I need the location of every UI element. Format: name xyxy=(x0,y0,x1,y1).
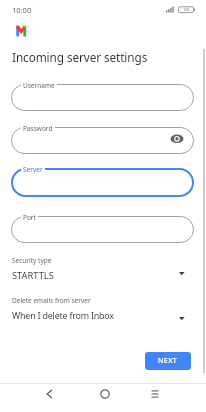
button[interactable] xyxy=(11,84,194,111)
button[interactable] xyxy=(11,127,194,154)
button[interactable] xyxy=(0,252,206,282)
staticText: Server xyxy=(23,165,43,174)
button[interactable] xyxy=(11,216,194,243)
button[interactable]: NEXT xyxy=(145,352,191,370)
button[interactable] xyxy=(0,292,206,324)
staticText: Incoming server settings xyxy=(12,49,148,65)
staticText: STARTTLS xyxy=(12,269,54,282)
button[interactable] xyxy=(95,384,115,404)
staticText: Port xyxy=(23,213,36,222)
button[interactable] xyxy=(145,384,165,404)
staticText: Security type xyxy=(12,256,52,265)
staticText: Username xyxy=(23,81,55,90)
button[interactable] xyxy=(38,384,59,404)
staticText: 10:00 xyxy=(12,5,32,15)
button[interactable] xyxy=(170,134,184,144)
button[interactable] xyxy=(16,25,27,37)
button[interactable] xyxy=(11,168,194,197)
staticText: When I delete from Inbox xyxy=(12,309,114,321)
staticText: Delete emails from server xyxy=(12,296,91,305)
staticText: Password xyxy=(23,124,53,133)
staticText: NEXT xyxy=(158,356,178,366)
staticText: 100 xyxy=(183,7,190,12)
